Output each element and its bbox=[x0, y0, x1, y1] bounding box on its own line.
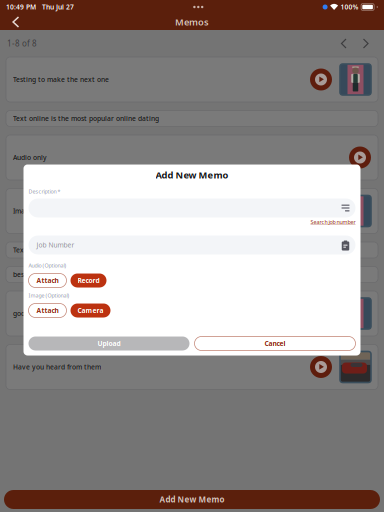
staticText: Add New Memo bbox=[159, 494, 224, 505]
staticText: Text only bbox=[13, 246, 43, 254]
staticText: Testing to make the next one bbox=[13, 75, 109, 84]
staticText: Job Number bbox=[36, 241, 74, 249]
button[interactable]: Cancel bbox=[194, 336, 355, 350]
staticText: Record bbox=[77, 276, 99, 285]
staticText: Image (Optional) bbox=[28, 292, 69, 299]
button[interactable]: Add New Memo bbox=[4, 490, 380, 509]
staticText: 100% bbox=[341, 3, 359, 11]
button[interactable]: Record bbox=[70, 273, 106, 287]
button[interactable]: Back bbox=[4, 14, 28, 30]
button[interactable]: Attach bbox=[28, 303, 66, 317]
staticText: Audio (Optional) bbox=[28, 262, 66, 269]
staticText: Text online is the most popular online d… bbox=[13, 114, 159, 123]
staticText: Memos bbox=[175, 16, 209, 28]
staticText: Attach bbox=[36, 306, 58, 315]
staticText: 10:49 PM Thu Jul 27 bbox=[6, 3, 74, 11]
button[interactable]: Have you heard from them bbox=[6, 344, 378, 389]
staticText: Description * bbox=[28, 188, 60, 195]
button[interactable]: Testing to make the next one bbox=[6, 57, 378, 102]
button[interactable]: Audio only bbox=[6, 135, 378, 180]
staticText: Search job number bbox=[310, 218, 355, 226]
staticText: Cancel bbox=[264, 339, 285, 348]
staticText: 1-8 of 8 bbox=[7, 38, 37, 49]
button[interactable]: good morning bbox=[6, 291, 378, 336]
button[interactable]: Next page bbox=[355, 38, 377, 49]
button[interactable]: Upload bbox=[28, 336, 189, 350]
staticText: Camera bbox=[77, 306, 103, 315]
staticText: Audio only bbox=[13, 153, 47, 162]
button[interactable]: Image only bbox=[6, 188, 378, 233]
button[interactable]: Previous page bbox=[333, 38, 355, 49]
button[interactable]: Text online is the most popular online d… bbox=[6, 110, 378, 126]
staticText: Upload bbox=[97, 339, 120, 348]
button[interactable]: Text only bbox=[6, 242, 378, 258]
button[interactable]: best time of the day bbox=[6, 266, 378, 282]
staticText: Add New Memo bbox=[155, 169, 228, 181]
staticText: Image only bbox=[13, 207, 49, 215]
staticText: Have you heard from them bbox=[13, 363, 101, 371]
button[interactable]: Search job number bbox=[310, 218, 355, 225]
staticText: best time of the day bbox=[13, 270, 79, 279]
staticText: Attach bbox=[36, 276, 58, 285]
button[interactable]: Attach bbox=[28, 273, 66, 287]
staticText: good morning bbox=[13, 309, 58, 318]
button[interactable]: Camera bbox=[70, 303, 110, 317]
